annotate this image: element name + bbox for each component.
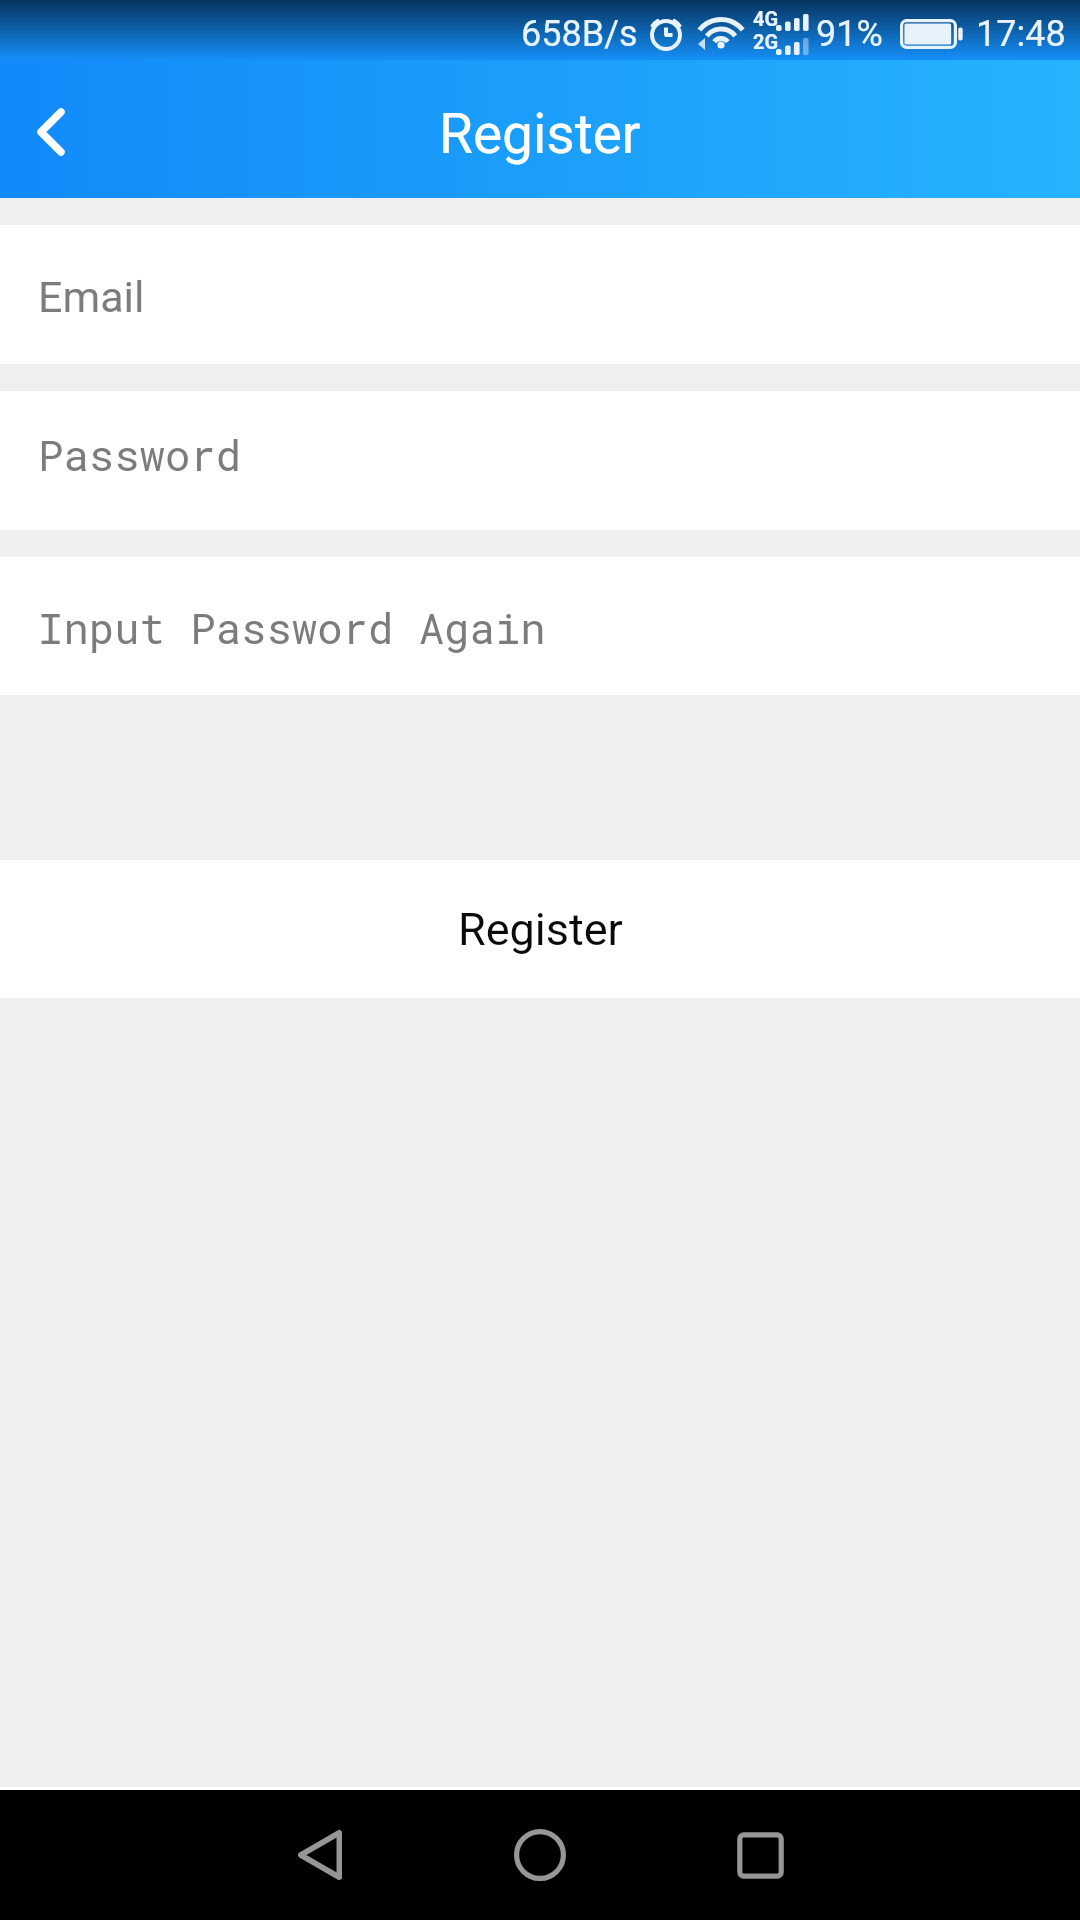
button[interactable]: Recent apps (695, 1790, 825, 1920)
staticText: Password (38, 427, 242, 483)
staticText: Register (439, 102, 641, 166)
staticText: 91% (816, 13, 883, 55)
staticText: 658B/s (521, 13, 638, 55)
button[interactable]: Back (255, 1790, 385, 1920)
button[interactable]: Input Password Again (0, 557, 1080, 695)
staticText: Register (458, 903, 623, 956)
staticText: 17:48 (976, 13, 1066, 55)
staticText: Email (38, 272, 145, 322)
button[interactable]: Back (0, 60, 104, 198)
button[interactable]: Home (475, 1790, 605, 1920)
button[interactable]: Register (0, 860, 1080, 998)
button[interactable]: Email (0, 225, 1080, 364)
staticText: 4G (753, 7, 779, 30)
staticText: Input Password Again (38, 600, 546, 656)
button[interactable]: Password (0, 391, 1080, 530)
staticText: 2G (753, 30, 779, 53)
